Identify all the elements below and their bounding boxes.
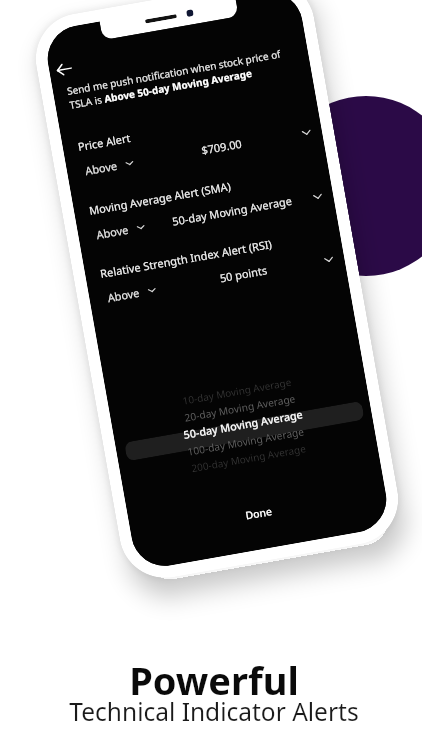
- button[interactable]: [70, 96, 314, 183]
- staticText: 200-day Moving Average: [190, 441, 307, 475]
- staticText: Above: [95, 222, 130, 242]
- staticText: 100-day Moving Average: [186, 424, 305, 459]
- staticText: 20-day Moving Average: [183, 391, 297, 425]
- button[interactable]: Back: [49, 56, 77, 83]
- staticText: 50-day Moving Average: [171, 193, 294, 229]
- staticText: Technical Indicator Alerts: [69, 695, 359, 728]
- staticText: Powerful: [129, 654, 299, 706]
- staticText: Moving Average Alert (SMA): [88, 178, 232, 218]
- button[interactable]: 50-day Moving Average: [114, 393, 371, 455]
- button[interactable]: [93, 223, 337, 310]
- staticText: Price Alert: [77, 130, 131, 154]
- button[interactable]: Done: [130, 484, 388, 549]
- button[interactable]: 100-day Moving Average: [117, 410, 374, 472]
- staticText: 10-day Moving Average: [181, 375, 293, 408]
- staticText: Above: [84, 158, 119, 178]
- button[interactable]: 200-day Moving Average: [120, 427, 377, 488]
- staticText: Above: [106, 285, 141, 305]
- staticText: $709.00: [200, 136, 243, 158]
- staticText: 50 points: [219, 262, 268, 285]
- button[interactable]: [81, 160, 326, 247]
- button[interactable]: 20-day Moving Average: [111, 377, 368, 438]
- button[interactable]: 10-day Moving Average: [108, 360, 365, 421]
- staticText: Send me push notification when stock pri…: [66, 42, 311, 112]
- staticText: 50-day Moving Average: [182, 406, 304, 442]
- staticText: Done: [244, 504, 273, 523]
- staticText: Relative Strength Index Alert (RSI): [99, 236, 273, 281]
